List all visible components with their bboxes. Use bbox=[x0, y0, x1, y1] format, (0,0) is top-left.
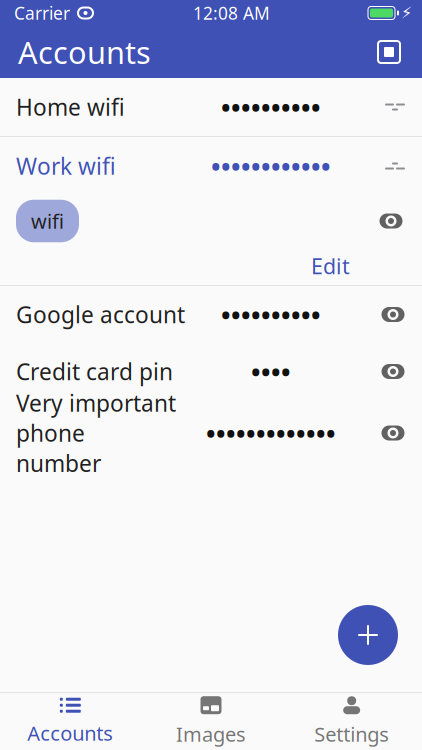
button[interactable]: wifi bbox=[16, 200, 79, 242]
staticText: Images bbox=[176, 721, 246, 747]
button[interactable]: Add account bbox=[338, 605, 398, 665]
staticText: Home wifi bbox=[16, 92, 125, 122]
staticText: Accounts bbox=[18, 32, 151, 72]
staticText: wifi bbox=[31, 208, 64, 234]
staticText: Work wifi bbox=[16, 151, 116, 181]
button[interactable]: Settings bbox=[281, 688, 422, 750]
staticText: Edit bbox=[311, 252, 350, 280]
staticText: Accounts bbox=[27, 720, 113, 746]
button[interactable]: Work wifi bbox=[0, 137, 422, 195]
staticText: •••• bbox=[251, 355, 291, 388]
button[interactable]: Home wifi bbox=[0, 78, 422, 136]
staticText: •••••••••••• bbox=[211, 149, 331, 183]
button[interactable]: Accounts bbox=[0, 689, 141, 750]
button[interactable]: Images bbox=[141, 688, 281, 750]
button[interactable]: Edit bbox=[301, 248, 360, 284]
staticText: Google account bbox=[16, 299, 185, 329]
staticText: 12:08 AM bbox=[193, 1, 270, 24]
staticText: •••••••••• bbox=[221, 298, 321, 331]
staticText: ••••••••••••• bbox=[206, 416, 336, 450]
button[interactable]: Very important phone number bbox=[0, 400, 422, 466]
staticText: Credit card pin bbox=[16, 356, 173, 386]
staticText: Settings bbox=[314, 721, 389, 747]
staticText: •••••••••• bbox=[221, 90, 321, 124]
button[interactable]: Show password bbox=[374, 208, 408, 234]
staticText: ⚡︎ bbox=[401, 4, 412, 22]
staticText: Carrier bbox=[14, 1, 70, 24]
button[interactable]: Google account bbox=[0, 286, 422, 343]
staticText: Very important phone number bbox=[16, 388, 176, 478]
button[interactable]: Credit card pin bbox=[0, 343, 422, 400]
button[interactable]: Select all bbox=[368, 31, 410, 73]
